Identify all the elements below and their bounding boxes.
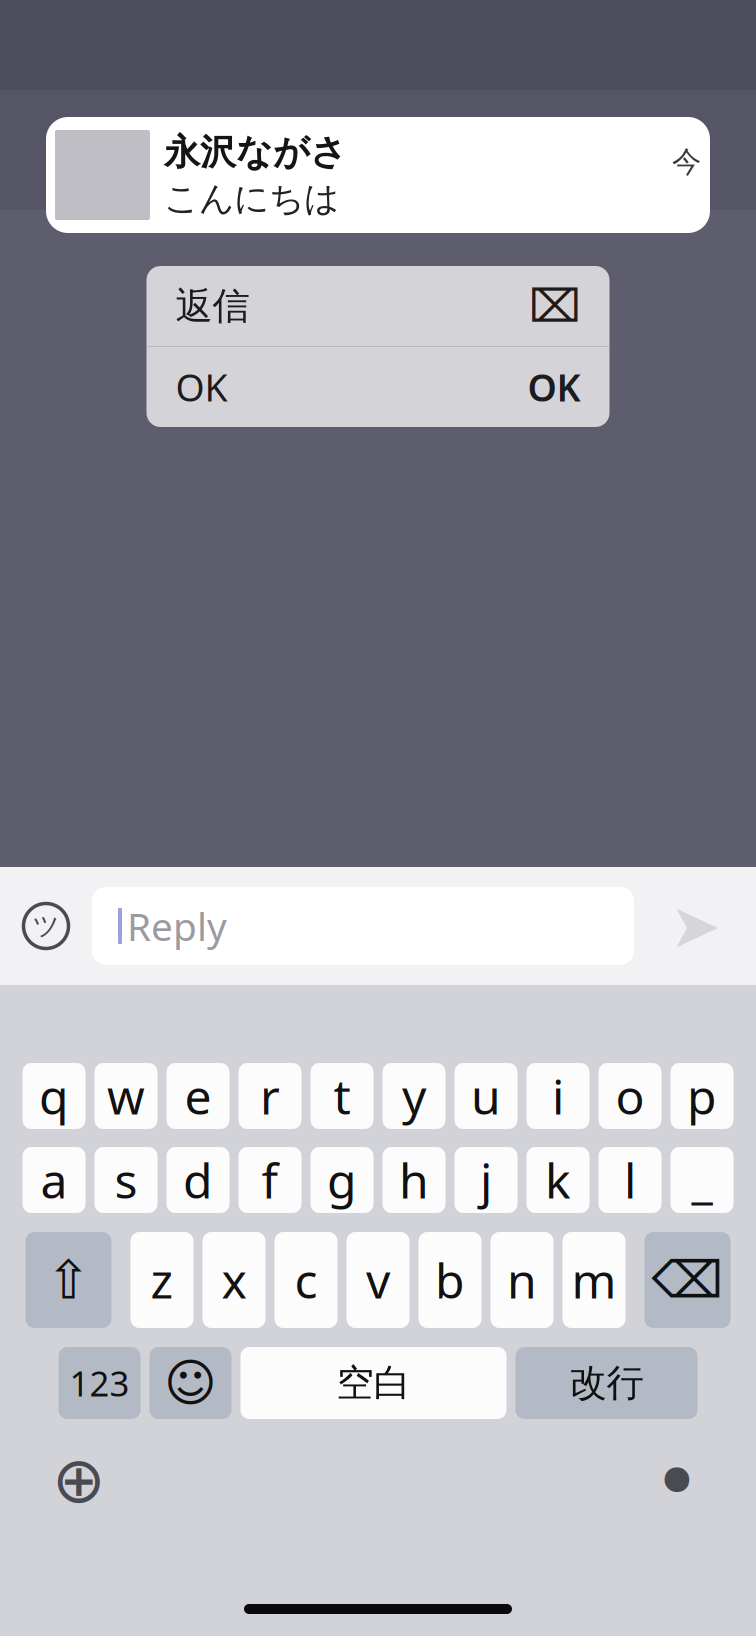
button[interactable]: f bbox=[238, 1147, 301, 1213]
staticText: 永沢ながさ bbox=[164, 130, 347, 174]
staticText: b bbox=[435, 1248, 465, 1312]
staticText: 返信 bbox=[175, 283, 249, 329]
staticText: ⊕ bbox=[52, 1444, 106, 1516]
button[interactable]: y bbox=[382, 1063, 445, 1129]
staticText: w bbox=[107, 1064, 145, 1128]
button[interactable]: l bbox=[598, 1147, 661, 1213]
button[interactable]: u bbox=[454, 1063, 517, 1129]
button[interactable]: s bbox=[94, 1147, 157, 1213]
button[interactable]: _ bbox=[670, 1147, 733, 1213]
button[interactable]: n bbox=[490, 1232, 553, 1328]
button[interactable]: Delete bbox=[644, 1232, 730, 1328]
button[interactable]: 永沢ながさ bbox=[46, 117, 710, 233]
staticText: k bbox=[545, 1148, 571, 1212]
staticText: ⇧ bbox=[46, 1250, 91, 1310]
button[interactable]: e bbox=[166, 1063, 229, 1129]
staticText: ⌧ bbox=[528, 280, 580, 332]
button[interactable]: Send bbox=[634, 871, 756, 981]
button[interactable]: Numbers bbox=[58, 1347, 140, 1419]
staticText: ツ bbox=[32, 910, 59, 942]
button[interactable]: Dictate bbox=[622, 1445, 732, 1515]
button[interactable]: g bbox=[310, 1147, 373, 1213]
button[interactable]: Emoji bbox=[0, 871, 92, 981]
staticText: 空白 bbox=[336, 1360, 410, 1406]
staticText: OK bbox=[175, 362, 227, 412]
staticText: ⌫ bbox=[651, 1251, 723, 1309]
staticText: 今 bbox=[672, 144, 701, 180]
staticText: f bbox=[261, 1148, 278, 1212]
staticText: u bbox=[471, 1064, 501, 1128]
staticText: t bbox=[333, 1064, 350, 1128]
staticText: ➤ bbox=[669, 891, 720, 961]
button[interactable]: i bbox=[526, 1063, 589, 1129]
staticText: q bbox=[39, 1064, 69, 1128]
staticText: j bbox=[480, 1148, 492, 1212]
staticText: こんにちは bbox=[164, 177, 339, 220]
button[interactable]: w bbox=[94, 1063, 157, 1129]
button[interactable]: v bbox=[346, 1232, 409, 1328]
button[interactable]: 返信 bbox=[146, 266, 609, 346]
staticText: h bbox=[399, 1148, 429, 1212]
button[interactable]: b bbox=[418, 1232, 481, 1328]
button[interactable]: a bbox=[22, 1147, 85, 1213]
staticText: y bbox=[402, 1064, 426, 1128]
staticText: i bbox=[552, 1064, 564, 1128]
button[interactable]: Change keyboard bbox=[24, 1445, 134, 1515]
staticText: ⏺ bbox=[663, 1454, 690, 1506]
staticText: a bbox=[40, 1148, 67, 1212]
staticText: e bbox=[184, 1064, 211, 1128]
button[interactable]: Reply bbox=[92, 887, 634, 965]
button[interactable]: c bbox=[274, 1232, 337, 1328]
button[interactable]: z bbox=[130, 1232, 193, 1328]
button[interactable]: Shift bbox=[25, 1232, 111, 1328]
staticText: ☺ bbox=[164, 1354, 217, 1412]
staticText: v bbox=[366, 1248, 390, 1312]
staticText: 改行 bbox=[569, 1360, 643, 1406]
staticText: p bbox=[687, 1064, 717, 1128]
button[interactable]: r bbox=[238, 1063, 301, 1129]
button[interactable]: o bbox=[598, 1063, 661, 1129]
staticText: z bbox=[150, 1248, 173, 1312]
button[interactable]: t bbox=[310, 1063, 373, 1129]
staticText: m bbox=[571, 1248, 616, 1312]
staticText: x bbox=[221, 1248, 246, 1312]
staticText: g bbox=[327, 1148, 357, 1212]
staticText: d bbox=[183, 1148, 213, 1212]
button[interactable]: d bbox=[166, 1147, 229, 1213]
button[interactable]: 改行 bbox=[515, 1347, 697, 1419]
button[interactable]: 空白 bbox=[240, 1347, 506, 1419]
staticText: r bbox=[260, 1064, 280, 1128]
staticText: Reply bbox=[127, 900, 227, 952]
button[interactable]: m bbox=[562, 1232, 625, 1328]
button[interactable]: q bbox=[22, 1063, 85, 1129]
staticText: l bbox=[624, 1148, 636, 1212]
button[interactable]: j bbox=[454, 1147, 517, 1213]
staticText: 123 bbox=[69, 1360, 129, 1406]
button[interactable]: x bbox=[202, 1232, 265, 1328]
button[interactable]: p bbox=[670, 1063, 733, 1129]
button[interactable]: k bbox=[526, 1147, 589, 1213]
button[interactable]: OK bbox=[146, 347, 609, 427]
staticText: _ bbox=[691, 1148, 712, 1212]
staticText: OK bbox=[527, 362, 580, 412]
staticText: c bbox=[294, 1248, 317, 1312]
staticText: o bbox=[615, 1064, 644, 1128]
button[interactable]: h bbox=[382, 1147, 445, 1213]
button[interactable]: Emoji keyboard bbox=[149, 1347, 231, 1419]
staticText: n bbox=[507, 1248, 537, 1312]
staticText: s bbox=[114, 1148, 137, 1212]
